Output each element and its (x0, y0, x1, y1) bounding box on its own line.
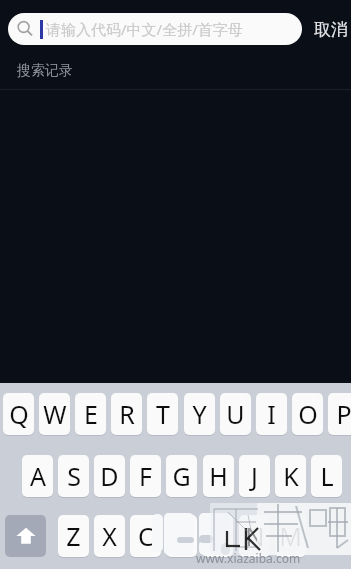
button[interactable]: U (220, 393, 251, 435)
staticText: 搜索记录 (17, 62, 73, 80)
staticText: S (67, 459, 81, 493)
staticText: I (267, 397, 276, 431)
button[interactable]: Y (184, 393, 215, 435)
button[interactable]: A (22, 455, 53, 497)
button[interactable]: V (166, 515, 197, 557)
button[interactable]: H (203, 455, 234, 497)
button[interactable]: B (202, 515, 233, 557)
button[interactable]: Shift (5, 515, 46, 557)
staticText: L (320, 459, 334, 493)
button[interactable]: G (166, 455, 197, 497)
staticText: M (279, 519, 302, 553)
button[interactable]: I (256, 393, 287, 435)
staticText: X (102, 519, 117, 553)
button[interactable]: N (239, 515, 270, 557)
staticText: B (209, 519, 226, 553)
button[interactable]: O (292, 393, 323, 435)
staticText: K (283, 459, 299, 493)
staticText: J (251, 459, 258, 493)
staticText: G (172, 459, 191, 493)
staticText: Y (192, 397, 207, 431)
button[interactable]: L (311, 455, 342, 497)
button[interactable]: Q (3, 393, 34, 435)
staticText: V (174, 519, 190, 553)
button[interactable]: C (130, 515, 161, 557)
staticText: R (119, 397, 135, 431)
staticText: E (84, 397, 98, 431)
staticText: H (209, 459, 228, 493)
staticText: 请输入代码/中文/全拼/首字母 (46, 19, 243, 39)
staticText: www.xiazaiba.com (196, 550, 301, 566)
button[interactable]: W (39, 393, 70, 435)
staticText: D (100, 459, 119, 493)
staticText: F (139, 459, 152, 493)
button[interactable]: K (275, 455, 306, 497)
button[interactable]: S (58, 455, 89, 497)
staticText: A (30, 459, 46, 493)
staticText: C (138, 519, 154, 553)
button[interactable]: Z (58, 515, 89, 557)
button[interactable]: J (239, 455, 270, 497)
button[interactable]: M (275, 515, 306, 557)
button[interactable]: R (111, 393, 142, 435)
button[interactable]: T (147, 393, 178, 435)
button[interactable]: F (130, 455, 161, 497)
staticText: Z (66, 519, 81, 553)
staticText: N (245, 519, 265, 553)
staticText: Q (9, 397, 29, 431)
staticText: W (43, 397, 67, 431)
button[interactable]: E (75, 393, 106, 435)
button[interactable]: D (94, 455, 125, 497)
staticText: U (226, 397, 245, 431)
button[interactable]: P (328, 393, 351, 435)
button[interactable]: X (94, 515, 125, 557)
button[interactable]: 请输入代码/中文/全拼/首字母 (8, 13, 302, 45)
staticText: T (156, 397, 170, 431)
button[interactable]: 取消 (314, 13, 351, 45)
staticText: P (336, 397, 351, 431)
staticText: O (298, 397, 318, 431)
staticText: 取消 (314, 19, 348, 40)
